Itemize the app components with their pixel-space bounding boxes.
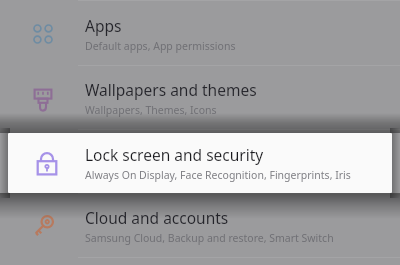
button[interactable]: Wallpapers and themes [0, 66, 400, 129]
other: Lock screen and security [0, 130, 85, 193]
button[interactable]: Cloud and accounts [0, 194, 400, 257]
staticText: Cloud and accounts [85, 207, 229, 228]
staticText: Default apps, App permissions [85, 39, 236, 53]
staticText: Wallpapers, Themes, Icons [85, 103, 217, 117]
button[interactable]: Lock screen and security [8, 133, 392, 193]
staticText: Apps [85, 15, 122, 36]
button[interactable]: Lock screen and security [0, 130, 400, 193]
other: Cloud and accounts [0, 194, 85, 257]
staticText: Samsung Cloud, Backup and restore, Smart… [85, 231, 334, 245]
button[interactable]: Apps [0, 2, 400, 65]
staticText: Wallpapers and themes [85, 79, 257, 100]
other: Lock screen and security [8, 133, 85, 193]
other: Wallpapers and themes [0, 66, 85, 129]
staticText: Lock screen and security [85, 144, 264, 165]
other: Apps [0, 2, 85, 65]
staticText: Always On Display, Face Recognition, Fin… [85, 168, 351, 182]
staticText: Always On Display, Face Recognition, Fin… [85, 167, 351, 181]
staticText: Lock screen and security [85, 143, 264, 164]
